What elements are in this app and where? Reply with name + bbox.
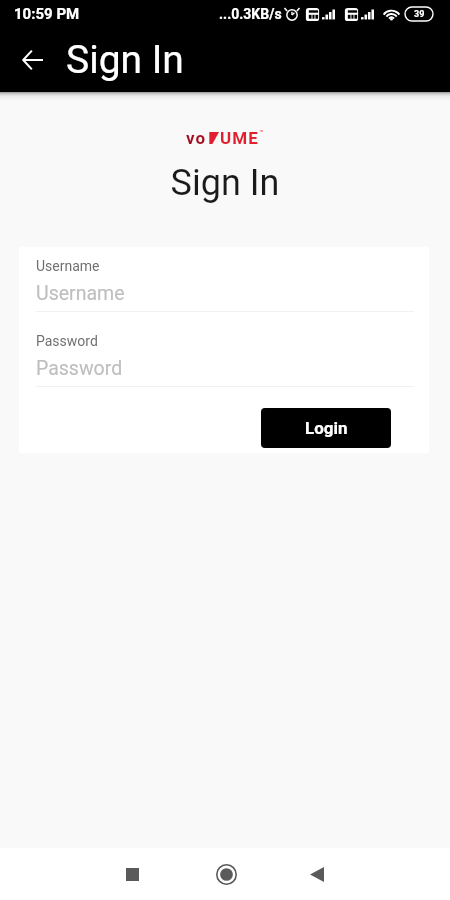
staticText: Password: [36, 357, 123, 380]
staticText: ™: [259, 129, 264, 137]
staticText: Login: [305, 418, 348, 438]
staticText: Sign In: [66, 37, 184, 83]
staticText: UME: [220, 128, 259, 144]
button[interactable]: Back: [293, 848, 341, 900]
staticText: 10:59 PM: [14, 5, 80, 23]
staticText: Sign In: [0, 162, 450, 204]
button[interactable]: Login: [261, 408, 391, 448]
staticText: vo: [186, 128, 207, 144]
staticText: Username: [36, 282, 125, 305]
staticText: Username: [36, 258, 100, 274]
staticText: ...0.3KB/s: [219, 6, 282, 22]
staticText: Password: [36, 333, 98, 349]
button[interactable]: Home: [202, 848, 250, 900]
staticText: 39: [414, 9, 425, 20]
button[interactable]: Back: [0, 28, 65, 92]
button[interactable]: Recent apps: [108, 848, 156, 900]
